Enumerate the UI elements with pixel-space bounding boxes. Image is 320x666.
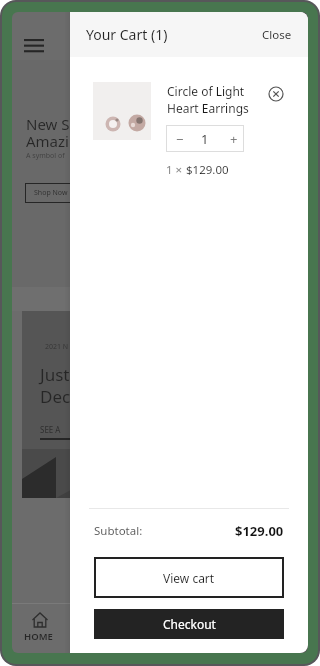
staticText: Circle of Light <box>167 83 245 99</box>
staticText: Your Cart (1) <box>86 25 168 44</box>
staticText: Subtotal: <box>94 523 143 539</box>
staticText: SEE A <box>40 424 61 435</box>
button[interactable]: − <box>167 126 193 151</box>
staticText: Close <box>262 27 292 43</box>
staticText: New Seas <box>26 114 94 134</box>
staticText: + <box>230 130 238 148</box>
staticText: A symbol of <box>26 151 65 161</box>
staticText: Heart Earrings <box>167 100 249 116</box>
button[interactable] <box>24 39 44 55</box>
staticText: 2021 N <box>45 342 69 352</box>
button[interactable]: + <box>224 126 243 151</box>
staticText: Dec <box>40 385 71 408</box>
staticText: Checkout <box>163 616 216 632</box>
staticText: HOME <box>24 630 53 643</box>
button[interactable]: Checkout <box>94 609 284 639</box>
button[interactable]: View cart <box>94 557 284 598</box>
staticText: $129.00 <box>186 162 229 178</box>
staticText: $129.00 <box>235 522 284 540</box>
staticText: Amazing <box>26 131 88 151</box>
staticText: View cart <box>163 570 215 586</box>
button[interactable]: Shop Now <box>25 183 87 203</box>
staticText: − <box>176 130 184 148</box>
staticText: 1 <box>201 130 209 148</box>
staticText: Shop Now <box>34 188 68 198</box>
staticText: Just <box>40 363 70 386</box>
button[interactable]: HOME <box>20 608 68 650</box>
button[interactable]: Close <box>256 21 298 49</box>
button[interactable] <box>266 84 286 104</box>
staticText: 1 × <box>166 162 186 178</box>
